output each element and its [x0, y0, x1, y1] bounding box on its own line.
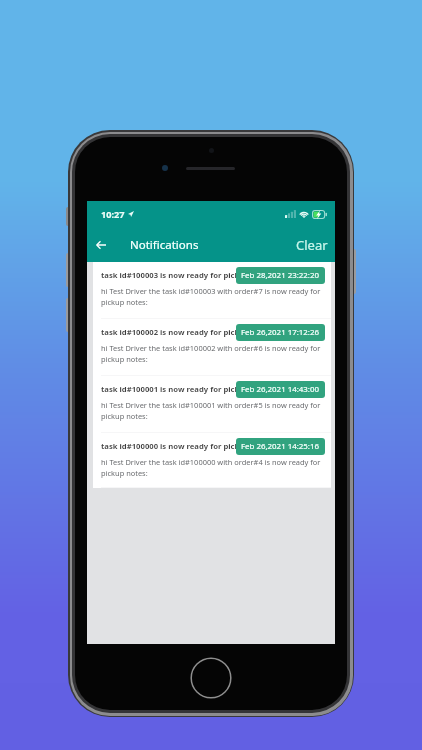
staticText: task id#100001 is now ready for pickup	[101, 384, 250, 394]
staticText: hi Test Driver the task id#100002 with o…	[101, 343, 325, 364]
staticText: Notifications	[130, 237, 199, 253]
staticText: task id#100003 is now ready for pickup	[101, 270, 250, 280]
staticText: 10:27	[101, 208, 125, 221]
staticText: task id#100002 is now ready for pickup	[101, 327, 250, 337]
button[interactable]: task id#100000 is now ready for pickup	[93, 433, 331, 488]
button[interactable]: Back	[87, 227, 114, 262]
staticText: Clear	[296, 236, 328, 254]
staticText: Feb 28,2021 23:22:20	[241, 270, 320, 281]
button[interactable]: task id#100003 is now ready for pickup	[93, 262, 331, 319]
staticText: hi Test Driver the task id#100003 with o…	[101, 286, 325, 307]
button[interactable]: task id#100001 is now ready for pickup	[93, 376, 331, 433]
staticText: Feb 26,2021 17:12:26	[241, 327, 320, 338]
staticText: Feb 26,2021 14:25:16	[241, 441, 320, 452]
staticText: hi Test Driver the task id#100000 with o…	[101, 457, 325, 478]
staticText: task id#100000 is now ready for pickup	[101, 441, 250, 451]
button[interactable]: Clear	[286, 227, 335, 262]
staticText: Feb 26,2021 14:43:00	[241, 384, 320, 395]
staticText: hi Test Driver the task id#100001 with o…	[101, 400, 325, 421]
button[interactable]: task id#100002 is now ready for pickup	[93, 319, 331, 376]
